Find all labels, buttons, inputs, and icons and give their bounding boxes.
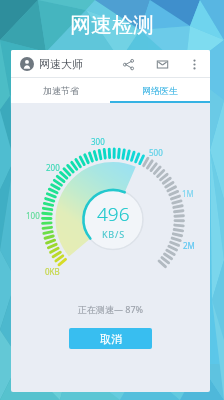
button[interactable]: Mail xyxy=(154,56,170,72)
button[interactable]: Share xyxy=(120,56,136,72)
button[interactable]: More options xyxy=(186,56,202,72)
staticText: 正在测速— 87% xyxy=(11,303,210,315)
staticText: 300 xyxy=(91,136,105,146)
button[interactable]: 加速节省 xyxy=(11,78,110,103)
staticText: 100 xyxy=(26,210,40,220)
staticText: 200 xyxy=(46,162,60,172)
staticText: 0KB xyxy=(45,266,60,276)
button[interactable]: 取消 xyxy=(69,328,152,349)
staticText: 496 xyxy=(97,201,130,227)
staticText: 网络医生 xyxy=(142,85,178,96)
staticText: 取消 xyxy=(100,332,122,346)
staticText: 1M xyxy=(182,188,194,198)
staticText: 500 xyxy=(149,147,163,157)
staticText: KB/S xyxy=(102,228,125,240)
staticText: 加速节省 xyxy=(43,85,79,96)
staticText: 网速检测 xyxy=(70,12,154,38)
staticText: 2M xyxy=(183,240,195,250)
button[interactable]: 网络医生 xyxy=(110,78,210,103)
staticText: 网速大师 xyxy=(39,57,83,71)
